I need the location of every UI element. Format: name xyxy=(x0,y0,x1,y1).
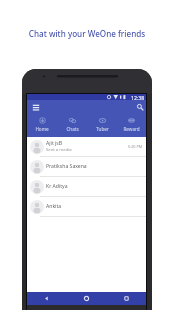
button[interactable]: Home xyxy=(27,114,57,137)
button[interactable]: Ajit jsB xyxy=(27,137,146,157)
staticText: Chat with your WeOne friends xyxy=(0,28,174,39)
staticText: Reward xyxy=(123,126,140,132)
button[interactable]: Pratiksha Saxena xyxy=(27,157,146,177)
staticText: Ajit jsB xyxy=(46,140,63,147)
staticText: Kr Aditya xyxy=(46,183,68,190)
staticText: Ankita xyxy=(46,203,62,210)
button[interactable]: Tuber xyxy=(87,114,117,137)
staticText: Pratiksha Saxena xyxy=(46,163,87,170)
staticText: 5:20 PM xyxy=(128,144,143,149)
staticText: 12:38 xyxy=(131,94,145,100)
button[interactable]: Kr Aditya xyxy=(27,177,146,197)
staticText: Sent a media xyxy=(46,147,72,153)
staticText: Tuber xyxy=(96,126,109,132)
button[interactable]: Chats xyxy=(57,114,87,137)
button[interactable]: Back xyxy=(27,292,66,305)
button[interactable]: Ankita xyxy=(27,197,146,217)
button[interactable]: Menu xyxy=(31,102,41,112)
button[interactable]: Home xyxy=(66,292,106,305)
button[interactable]: Search xyxy=(135,102,145,112)
staticText: Home xyxy=(35,126,49,132)
button[interactable]: Recents xyxy=(106,292,146,305)
button[interactable]: Reward xyxy=(117,114,146,137)
staticText: Chats xyxy=(66,126,79,132)
